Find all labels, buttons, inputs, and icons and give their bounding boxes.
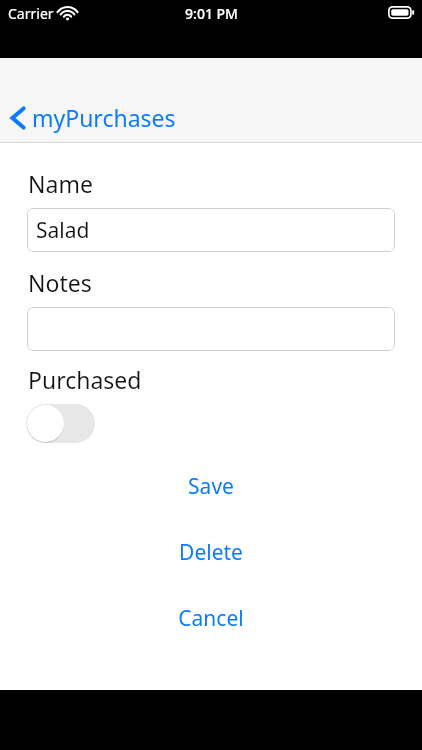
staticText: 9:01 PM — [185, 4, 238, 23]
staticText: Purchased — [28, 364, 142, 395]
staticText: Name — [28, 168, 93, 199]
button[interactable]: Save — [0, 472, 422, 496]
staticText: Notes — [28, 267, 92, 298]
button[interactable]: Salad — [27, 208, 395, 252]
button[interactable]: Purchased toggle — [26, 404, 95, 443]
other: Back — [8, 103, 28, 133]
staticText: Save — [188, 472, 234, 496]
button[interactable]: Back — [8, 102, 176, 133]
staticText: Cancel — [178, 604, 244, 628]
button[interactable] — [27, 307, 395, 351]
button[interactable]: Delete — [0, 538, 422, 562]
staticText: myPurchases — [32, 102, 176, 133]
button[interactable]: Cancel — [0, 604, 422, 628]
staticText: Carrier — [8, 4, 54, 23]
staticText: Delete — [179, 538, 243, 562]
staticText: Salad — [36, 216, 90, 245]
